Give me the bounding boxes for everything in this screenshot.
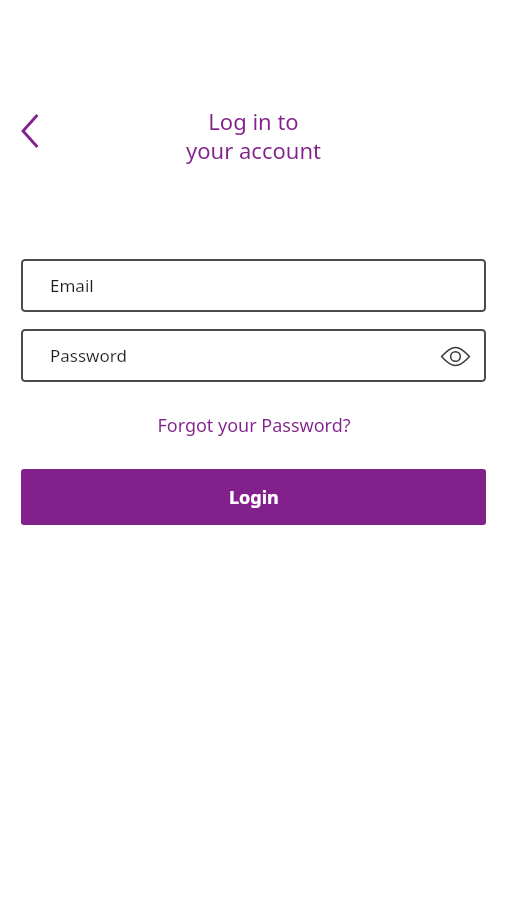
button[interactable]: Email [21, 259, 486, 312]
button[interactable]: Forgot your Password? [151, 409, 357, 442]
button[interactable]: Login [21, 469, 486, 525]
staticText: Password [50, 344, 127, 367]
button[interactable]: Back [7, 107, 55, 155]
staticText: Forgot your Password? [157, 413, 351, 438]
staticText: Login [229, 485, 279, 510]
button[interactable]: Password [21, 329, 486, 382]
button[interactable]: Show password [438, 339, 472, 373]
staticText: Log in to your account [186, 106, 321, 165]
staticText: Email [50, 274, 94, 297]
